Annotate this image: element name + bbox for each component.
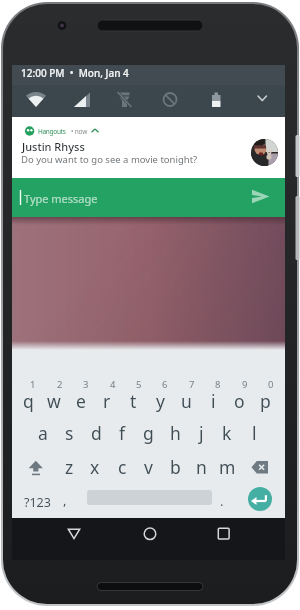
button[interactable] <box>20 452 52 482</box>
staticText: g <box>143 421 154 445</box>
staticText: h <box>170 421 181 445</box>
button[interactable] <box>246 452 276 482</box>
staticText: v <box>144 455 153 479</box>
staticText: Hangouts <box>38 127 66 136</box>
button[interactable]: t <box>120 388 146 414</box>
button[interactable] <box>248 487 272 511</box>
staticText: 9 <box>242 378 248 391</box>
button[interactable] <box>248 88 276 112</box>
staticText: 3 <box>83 378 89 391</box>
button[interactable]: s <box>56 420 82 446</box>
staticText: Do you want to go see a movie tonight? <box>21 153 198 166</box>
button[interactable]: e <box>68 388 94 414</box>
staticText: 12:00 PM • Mon, Jan 4 <box>21 66 129 80</box>
button[interactable]: z <box>56 454 82 480</box>
button[interactable]: b <box>162 454 188 480</box>
staticText: d <box>91 421 102 445</box>
staticText: e <box>76 389 86 413</box>
staticText: Type message <box>24 191 98 206</box>
button[interactable]: p <box>252 388 278 414</box>
staticText: 0 <box>268 378 274 391</box>
button[interactable] <box>12 117 285 178</box>
staticText: w <box>47 389 61 413</box>
staticText: . <box>220 492 224 510</box>
staticText: o <box>234 389 245 413</box>
button[interactable] <box>208 518 240 550</box>
button[interactable]: d <box>83 420 109 446</box>
staticText: 6 <box>162 378 168 391</box>
staticText: 8 <box>215 378 221 391</box>
button[interactable]: w <box>41 388 67 414</box>
staticText: 2 <box>57 378 63 391</box>
staticText: z <box>65 455 74 479</box>
staticText: i <box>211 389 216 413</box>
staticText: b <box>170 455 181 479</box>
staticText: a <box>38 421 48 445</box>
staticText: , <box>63 491 67 509</box>
button[interactable]: x <box>82 454 108 480</box>
staticText: m <box>219 455 236 479</box>
button[interactable]: o <box>226 388 252 414</box>
staticText: • now <box>71 127 88 136</box>
button[interactable]: , <box>52 487 78 513</box>
staticText: x <box>90 455 100 479</box>
staticText: y <box>156 389 165 413</box>
button[interactable] <box>12 178 285 217</box>
staticText: 1 <box>30 378 36 391</box>
button[interactable]: n <box>188 454 214 480</box>
staticText: ?123 <box>24 494 51 511</box>
staticText: c <box>118 455 127 479</box>
button[interactable]: c <box>109 454 135 480</box>
button[interactable]: . <box>209 488 235 514</box>
staticText: j <box>199 421 204 445</box>
staticText: 5 <box>136 378 142 391</box>
staticText: s <box>65 421 74 445</box>
staticText: u <box>181 389 192 413</box>
staticText: k <box>222 421 232 445</box>
button[interactable]: l <box>241 420 267 446</box>
button[interactable]: u <box>173 388 199 414</box>
staticText: p <box>260 389 271 413</box>
staticText: l <box>252 421 257 445</box>
staticText: 4 <box>110 378 116 391</box>
button[interactable]: i <box>200 388 226 414</box>
button[interactable] <box>134 518 166 550</box>
staticText: q <box>23 389 34 413</box>
staticText: Justin Rhyss <box>22 139 85 154</box>
button[interactable] <box>244 182 278 212</box>
button[interactable]: g <box>135 420 161 446</box>
staticText: 7 <box>189 378 195 391</box>
staticText: t <box>130 389 137 413</box>
button[interactable]: h <box>162 420 188 446</box>
button[interactable]: m <box>214 454 240 480</box>
staticText: n <box>196 455 207 479</box>
staticText: f <box>119 421 126 445</box>
button[interactable]: q <box>15 388 41 414</box>
button[interactable]: y <box>147 388 173 414</box>
button[interactable]: a <box>30 420 56 446</box>
button[interactable]: j <box>188 420 214 446</box>
button[interactable]: k <box>214 420 240 446</box>
button[interactable]: ?123 <box>20 489 54 515</box>
button[interactable]: v <box>135 454 161 480</box>
button[interactable]: f <box>109 420 135 446</box>
button[interactable] <box>58 518 90 550</box>
staticText: r <box>103 389 111 413</box>
button[interactable]: r <box>94 388 120 414</box>
